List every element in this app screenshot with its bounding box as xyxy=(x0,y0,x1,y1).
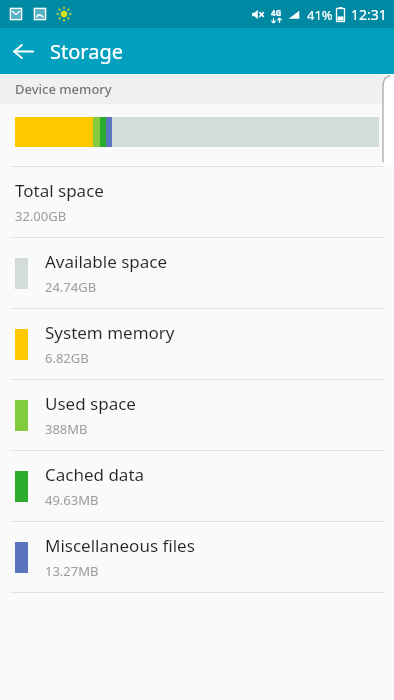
staticText: Miscellaneous files xyxy=(45,534,195,557)
button[interactable]: Available space xyxy=(0,238,394,308)
staticText: Storage xyxy=(50,38,123,65)
staticText: 24.74GB xyxy=(45,278,97,296)
button[interactable]: Used space xyxy=(0,380,394,450)
staticText: Device memory xyxy=(15,80,112,98)
button[interactable]: Total space xyxy=(0,167,394,237)
button[interactable]: Miscellaneous files xyxy=(0,522,394,592)
staticText: 4G xyxy=(271,7,282,18)
button[interactable]: System memory xyxy=(0,309,394,379)
button[interactable]: Back xyxy=(0,28,46,74)
staticText: 41% xyxy=(307,6,333,24)
staticText: 12:31 xyxy=(351,5,387,24)
staticText: 388MB xyxy=(45,420,88,438)
staticText: 13.27MB xyxy=(45,562,99,580)
button[interactable]: Cached data xyxy=(0,451,394,521)
staticText: System memory xyxy=(45,321,175,344)
staticText: Used space xyxy=(45,392,136,415)
staticText: Cached data xyxy=(45,463,145,486)
staticText: 6.82GB xyxy=(45,349,89,367)
staticText: 49.63MB xyxy=(45,491,99,509)
staticText: Total space xyxy=(15,179,104,202)
staticText: 32.00GB xyxy=(15,207,67,225)
staticText: Available space xyxy=(45,250,168,273)
